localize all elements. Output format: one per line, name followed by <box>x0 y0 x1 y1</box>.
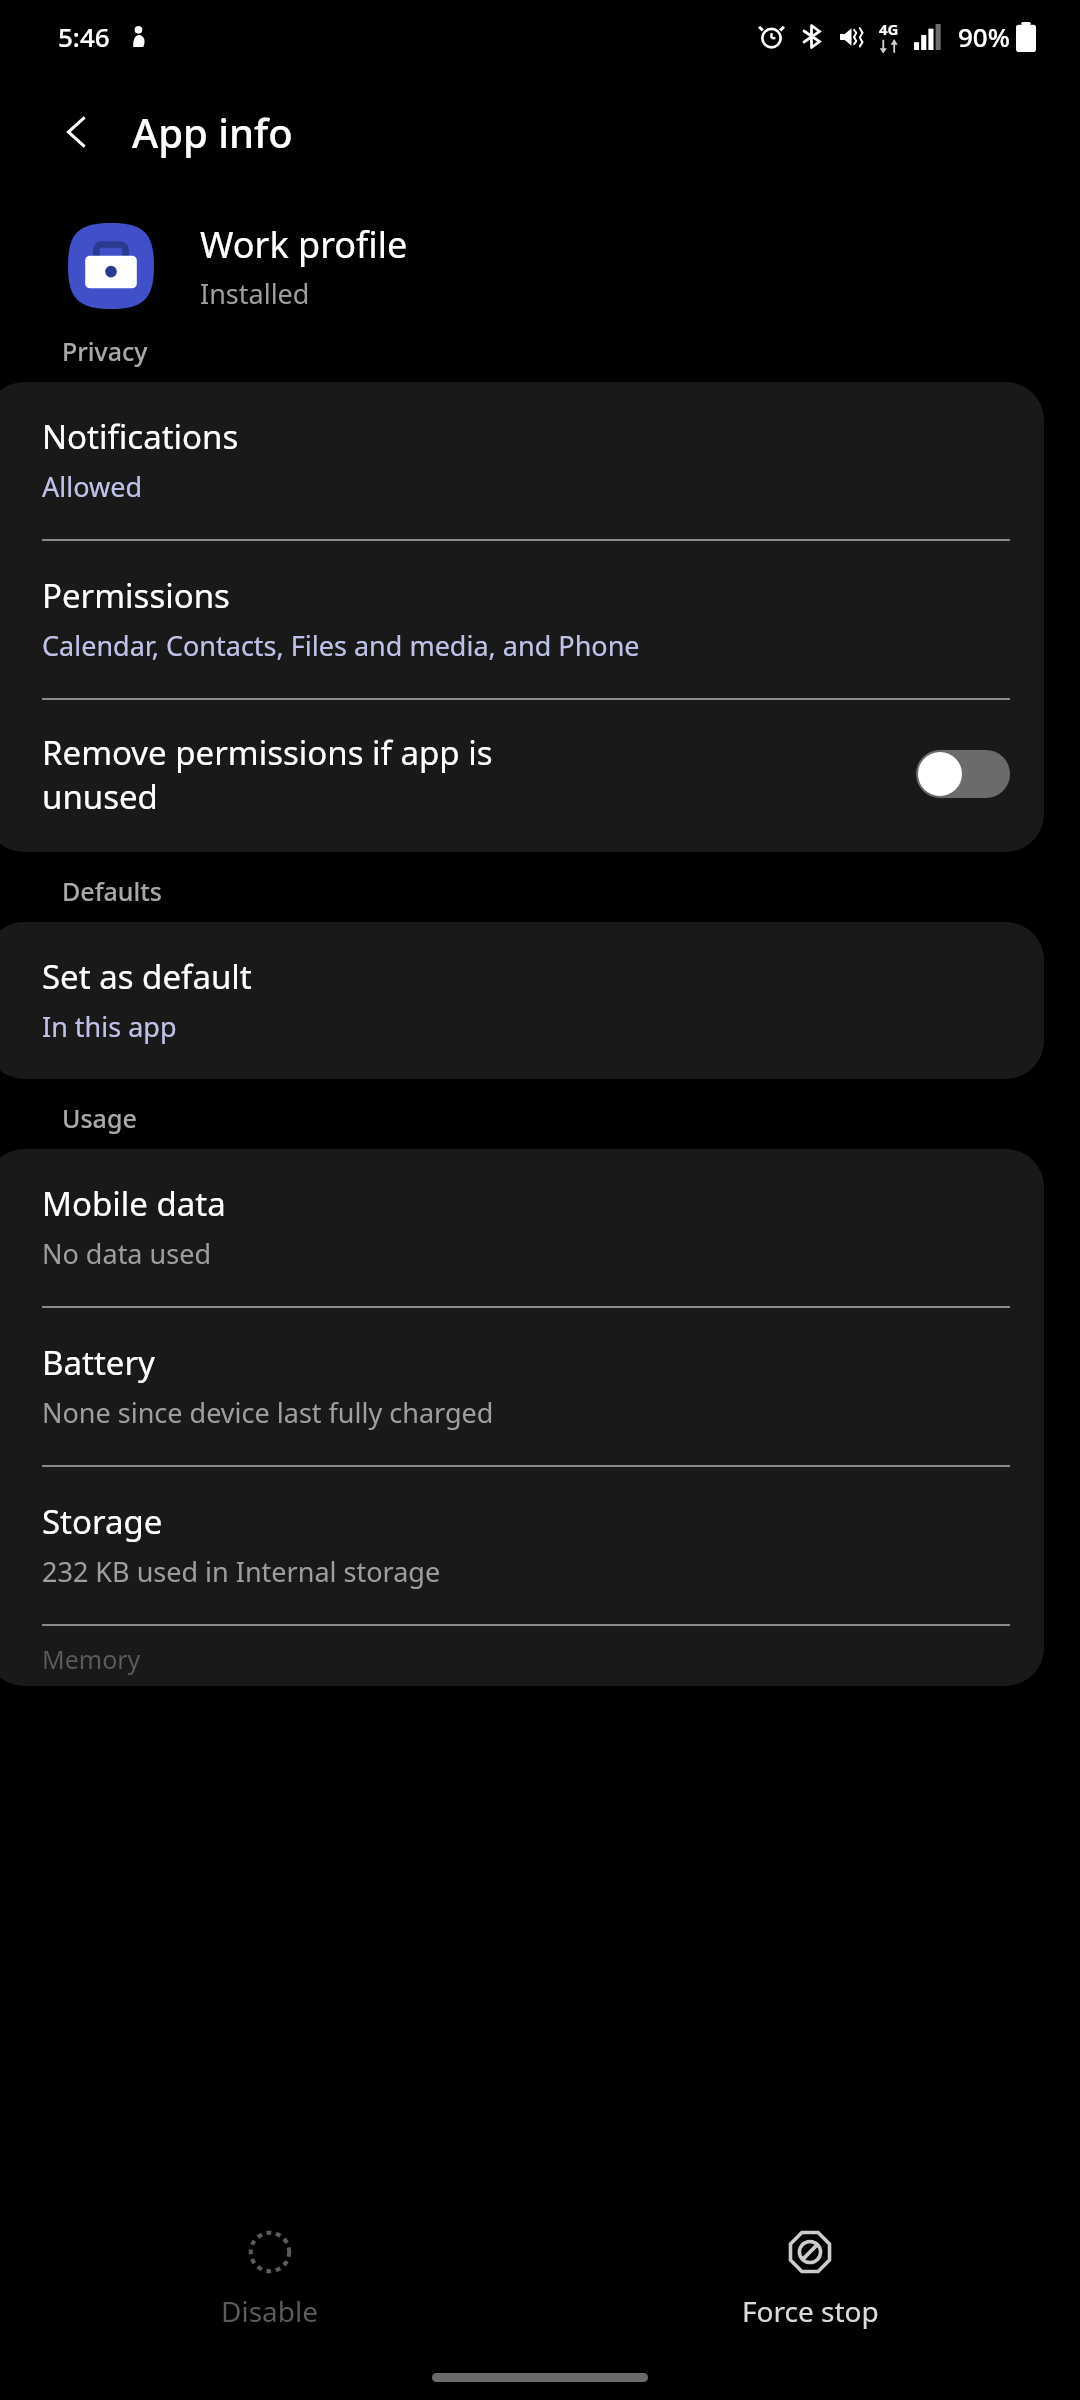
staticText: App info <box>132 105 293 159</box>
staticText: Work profile <box>200 220 408 269</box>
staticText: Privacy <box>62 334 148 368</box>
staticText: Permissions <box>42 573 230 618</box>
staticText: 232 KB used in Internal storage <box>42 1553 441 1590</box>
staticText: Defaults <box>62 874 163 908</box>
staticText: Storage <box>42 1499 163 1544</box>
button[interactable]: Notifications <box>0 382 1044 539</box>
button[interactable]: Remove permissions if app is unused <box>0 700 1044 852</box>
staticText: Notifications <box>42 414 239 459</box>
staticText: Battery <box>42 1340 155 1385</box>
staticText: Disable <box>221 2292 319 2330</box>
staticText: 4G <box>879 19 899 39</box>
staticText: Calendar, Contacts, Files and media, and… <box>42 627 640 664</box>
staticText: Allowed <box>42 468 143 505</box>
staticText: Usage <box>62 1101 137 1135</box>
staticText: Remove permissions if app is unused <box>42 730 493 818</box>
staticText: 5:46 <box>58 19 110 54</box>
staticText: None since device last fully charged <box>42 1394 494 1431</box>
staticText: 90% <box>958 19 1010 54</box>
button[interactable]: Mobile data <box>0 1149 1044 1306</box>
button[interactable]: Disable <box>0 2218 540 2340</box>
staticText: No data used <box>42 1235 211 1272</box>
button[interactable]: Force stop <box>540 2218 1080 2340</box>
button[interactable]: Set as default <box>0 922 1044 1079</box>
staticText: Mobile data <box>42 1181 226 1226</box>
staticText: Force stop <box>742 2292 879 2330</box>
staticText: In this app <box>42 1008 177 1045</box>
staticText: Installed <box>200 275 310 312</box>
staticText: Set as default <box>42 954 252 999</box>
button[interactable]: Battery <box>0 1308 1044 1465</box>
button[interactable]: Storage <box>0 1467 1044 1624</box>
button[interactable]: Back <box>46 101 108 163</box>
button[interactable]: Permissions <box>0 541 1044 698</box>
staticText: Memory <box>42 1642 141 1676</box>
